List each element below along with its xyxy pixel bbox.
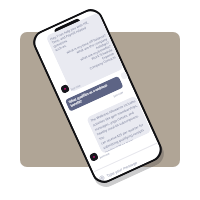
other: Add attachment	[99, 175, 105, 181]
staticText: What qualifies as a wellness benefit?	[68, 83, 110, 108]
staticText: Just now	[99, 151, 111, 159]
button[interactable]: What qualifies as a wellness benefit?	[65, 75, 124, 112]
staticText: The Wellness Allowance includes activiti…	[90, 98, 152, 153]
button[interactable]: Hey, I can help you with HR, Time, and P…	[45, 12, 124, 93]
button[interactable]: Add attachment	[93, 143, 163, 184]
staticText: Just now	[113, 90, 124, 98]
button[interactable]: The Wellness Allowance includes activiti…	[86, 95, 152, 154]
staticText: Hey, I can help you with HR, Time, and P…	[49, 16, 103, 52]
staticText: Type your message	[106, 160, 138, 178]
staticText: what is my time off balance? what are th…	[57, 33, 116, 80]
staticText: Just now	[70, 83, 82, 91]
